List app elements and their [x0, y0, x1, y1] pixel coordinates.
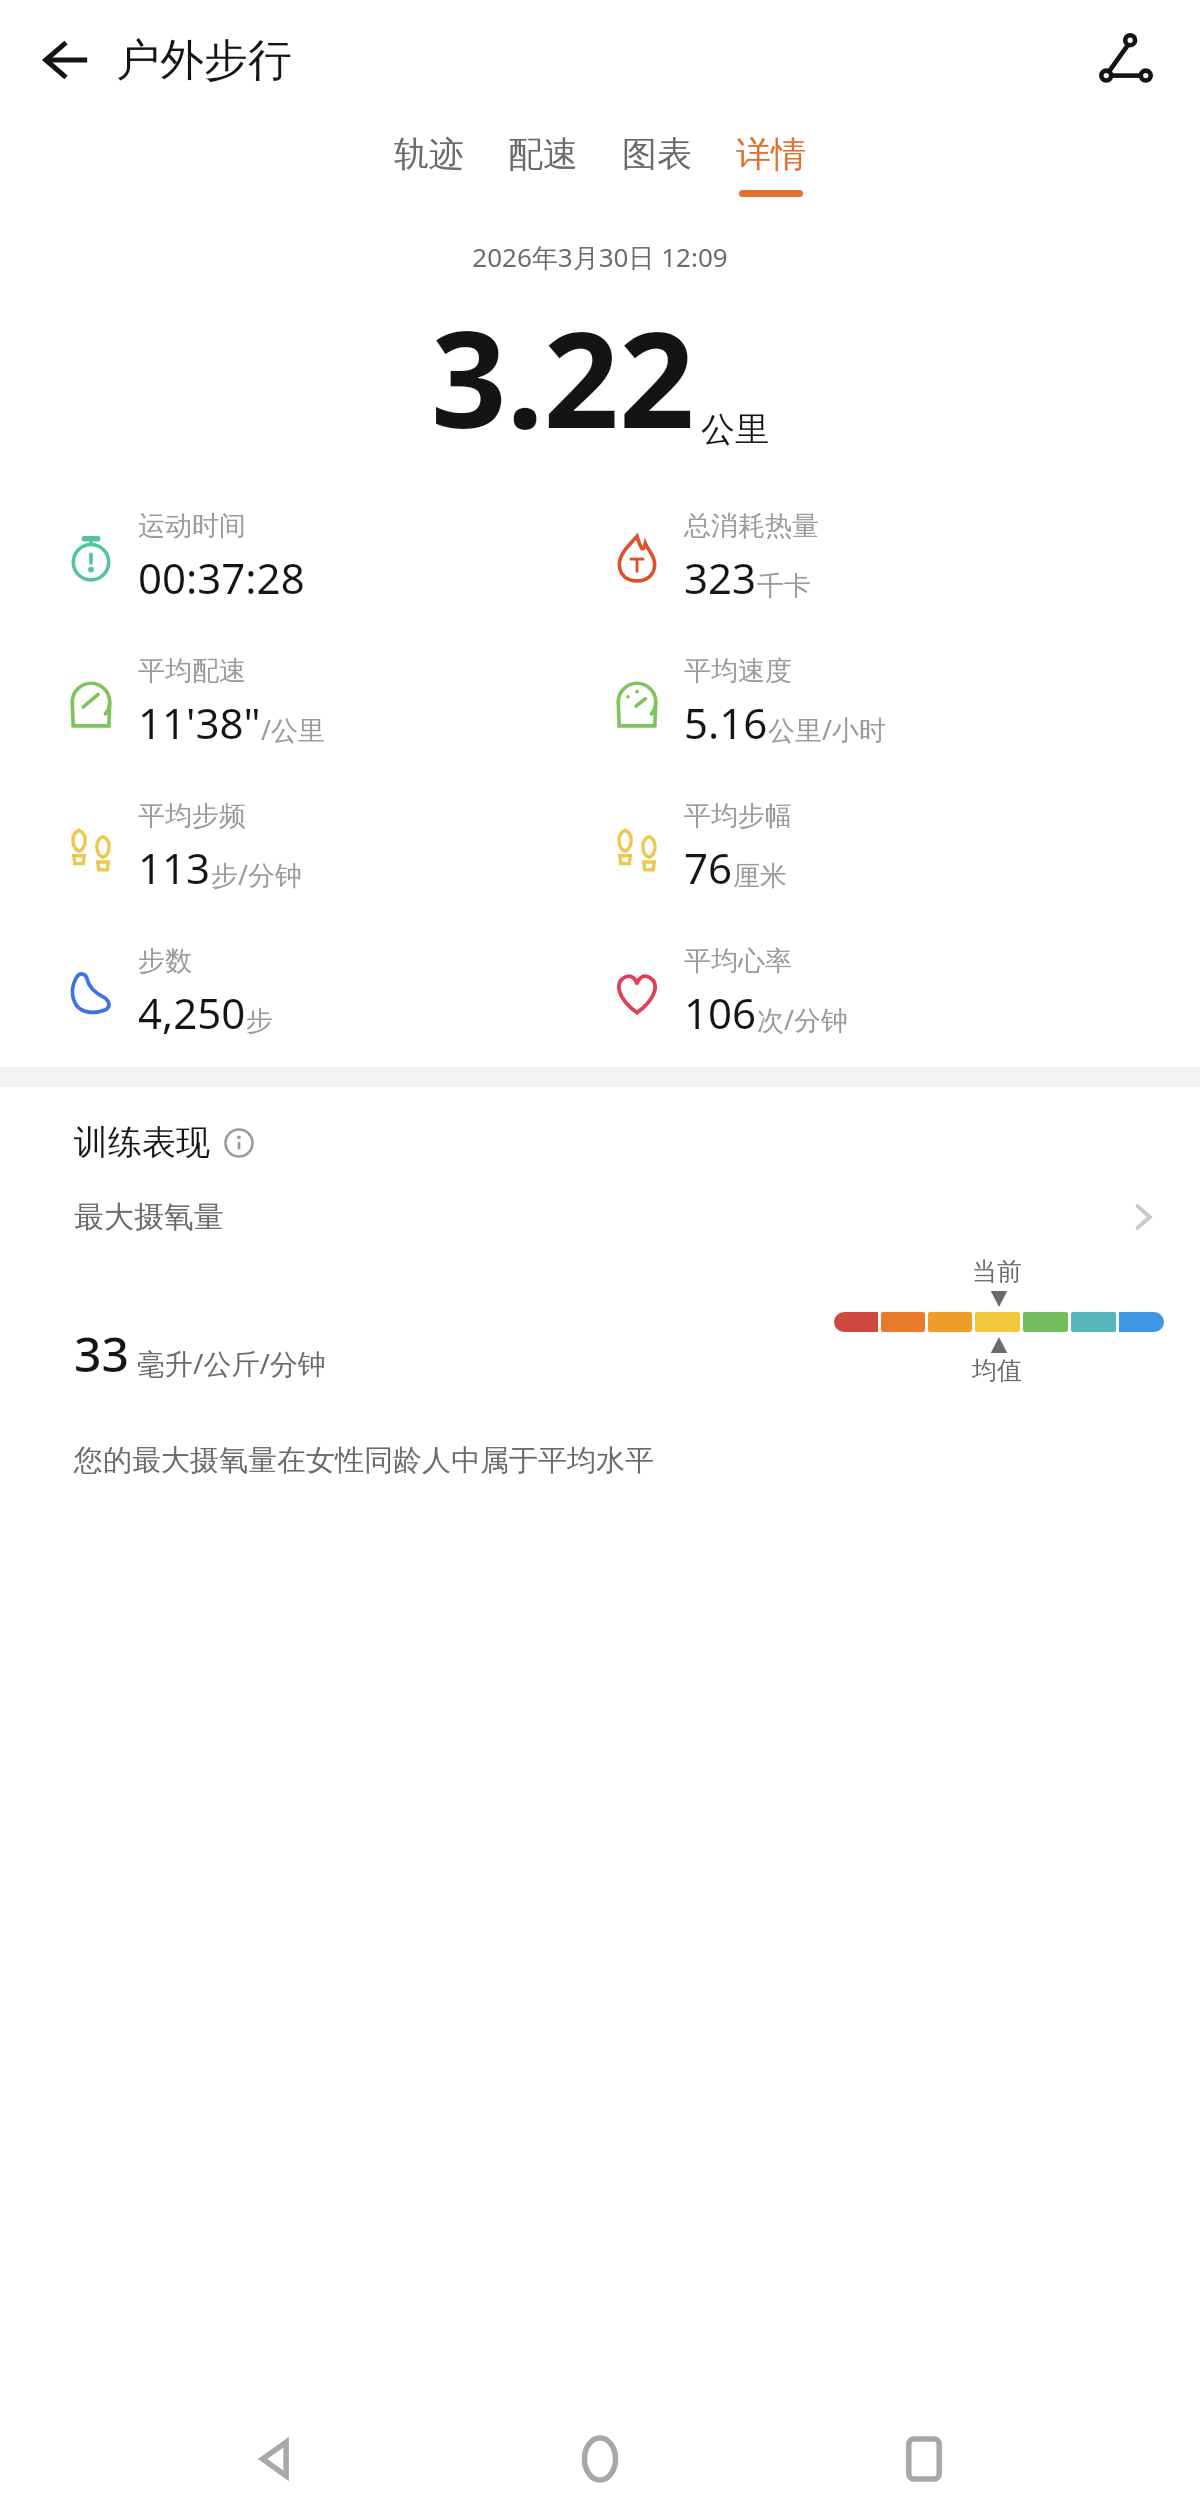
staticText: 千卡 [757, 569, 811, 603]
staticText: 公里/小时 [768, 711, 887, 748]
staticText: 均值 [972, 1355, 1022, 1386]
button[interactable]: 运动时间 [62, 509, 305, 606]
button[interactable]: 训练表现 [74, 1121, 254, 1164]
button[interactable]: 配速 [486, 130, 600, 199]
staticText: 113 [138, 839, 211, 896]
staticText: 厘米 [733, 859, 787, 893]
button[interactable]: 图表 [600, 130, 714, 199]
button[interactable]: Back [228, 2411, 324, 2507]
staticText: 76 [684, 839, 733, 896]
button[interactable]: Back [28, 22, 104, 98]
staticText: 毫升/公斤/分钟 [137, 1344, 326, 1382]
staticText: 轨迹 [394, 132, 464, 176]
staticText: 步数 [138, 944, 192, 978]
staticText: 11'38" [138, 694, 261, 751]
staticText: 步 [246, 1004, 273, 1038]
staticText: 次/分钟 [757, 1001, 849, 1038]
button[interactable]: 详情 [714, 130, 828, 199]
staticText: 图表 [622, 132, 692, 176]
staticText: 您的最大摄氧量在女性同龄人中属于平均水平 [74, 1442, 654, 1479]
staticText: 平均配速 [138, 654, 246, 688]
staticText: 详情 [736, 132, 806, 176]
staticText: 平均步幅 [684, 799, 792, 833]
staticText: 配速 [508, 132, 578, 176]
staticText: 平均速度 [684, 654, 792, 688]
staticText: 平均步频 [138, 799, 246, 833]
staticText: 平均心率 [684, 944, 792, 978]
staticText: 5.16 [684, 694, 768, 751]
staticText: 运动时间 [138, 509, 246, 543]
button[interactable]: 平均步幅 [608, 799, 792, 896]
staticText: 户外步行 [116, 33, 292, 88]
button[interactable]: 平均步频 [62, 799, 303, 896]
button[interactable]: 最大摄氧量 [0, 1198, 1200, 1236]
staticText: 2026年3月30日 12:09 [0, 239, 1200, 275]
button[interactable]: 总消耗热量 [608, 509, 819, 606]
staticText: 当前 [972, 1256, 1022, 1287]
button[interactable]: Share [1086, 20, 1166, 100]
other: More [1126, 1200, 1160, 1234]
staticText: 106 [684, 984, 757, 1041]
staticText: 33 [74, 1321, 129, 1386]
staticText: 4,250 [138, 984, 246, 1041]
button[interactable]: Home [552, 2411, 648, 2507]
staticText: 训练表现 [74, 1121, 210, 1164]
staticText: 公里 [701, 408, 769, 451]
staticText: 最大摄氧量 [74, 1198, 224, 1236]
button[interactable]: 平均配速 [62, 654, 326, 751]
button[interactable]: 平均速度 [608, 654, 887, 751]
button[interactable]: Recents [876, 2411, 972, 2507]
button[interactable]: 步数 [62, 944, 273, 1041]
staticText: /公里 [261, 711, 326, 748]
staticText: 3.22 [431, 287, 695, 467]
staticText: 00:37:28 [138, 549, 305, 606]
staticText: 总消耗热量 [684, 509, 819, 543]
button[interactable]: 轨迹 [372, 130, 486, 199]
staticText: 323 [684, 549, 757, 606]
staticText: 步/分钟 [211, 856, 303, 893]
button[interactable]: 平均心率 [608, 944, 849, 1041]
